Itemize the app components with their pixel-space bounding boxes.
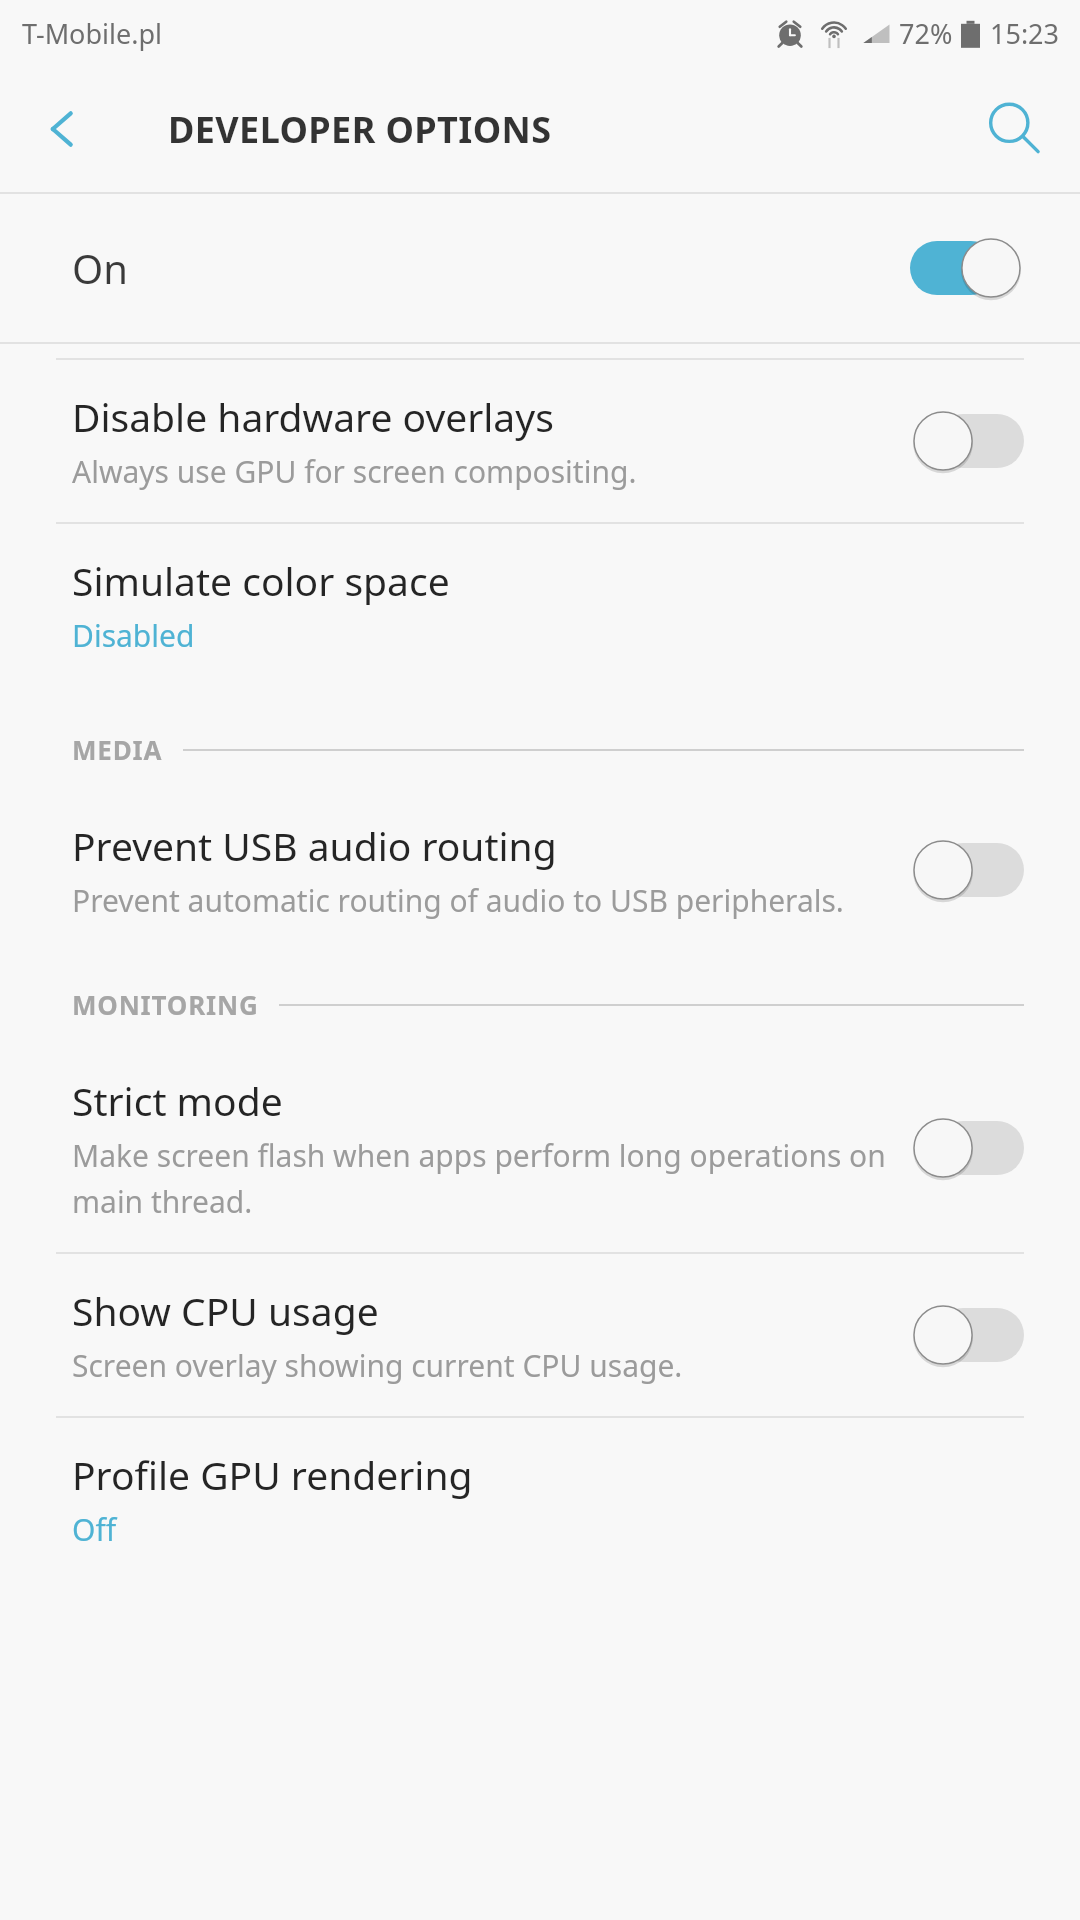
button[interactable]: Profile GPU rendering xyxy=(0,1418,1080,1580)
button[interactable]: Toggle off xyxy=(914,1302,1024,1368)
staticText: Always use GPU for screen compositing. xyxy=(72,451,637,492)
button[interactable]: On xyxy=(0,194,1080,342)
staticText: MEDIA xyxy=(72,732,163,767)
button[interactable]: Toggle off xyxy=(914,837,1024,903)
button[interactable]: Show CPU usage xyxy=(0,1254,1080,1416)
button[interactable]: Back xyxy=(36,101,92,157)
staticText: Disable hardware overlays xyxy=(72,390,554,443)
staticText: 72% xyxy=(899,15,953,52)
staticText: DEVELOPER OPTIONS xyxy=(168,105,552,154)
staticText: Simulate color space xyxy=(72,554,450,607)
staticText: Make screen flash when apps perform long… xyxy=(72,1135,890,1222)
staticText: T-Mobile.pl xyxy=(22,15,163,52)
staticText: Prevent USB audio routing xyxy=(72,819,557,872)
button[interactable]: Toggle off xyxy=(914,408,1024,474)
staticText: Screen overlay showing current CPU usage… xyxy=(72,1345,683,1386)
button[interactable]: Search xyxy=(982,98,1044,160)
staticText: Off xyxy=(72,1509,117,1550)
button[interactable]: Disable hardware overlays xyxy=(0,360,1080,522)
staticText: Strict mode xyxy=(72,1074,283,1127)
staticText: MONITORING xyxy=(72,987,259,1022)
staticText: 15:23 xyxy=(990,15,1060,52)
button[interactable]: Toggle off xyxy=(914,1115,1024,1181)
staticText: Profile GPU rendering xyxy=(72,1448,473,1501)
staticText: Prevent automatic routing of audio to US… xyxy=(72,880,844,921)
button[interactable]: Prevent USB audio routing xyxy=(0,789,1080,951)
staticText: On xyxy=(72,241,910,295)
button[interactable]: Strict mode xyxy=(0,1044,1080,1252)
button[interactable]: Simulate color space xyxy=(0,524,1080,686)
staticText: Disabled xyxy=(72,615,195,656)
staticText: Show CPU usage xyxy=(72,1284,379,1337)
button[interactable]: Toggle on xyxy=(910,235,1020,301)
